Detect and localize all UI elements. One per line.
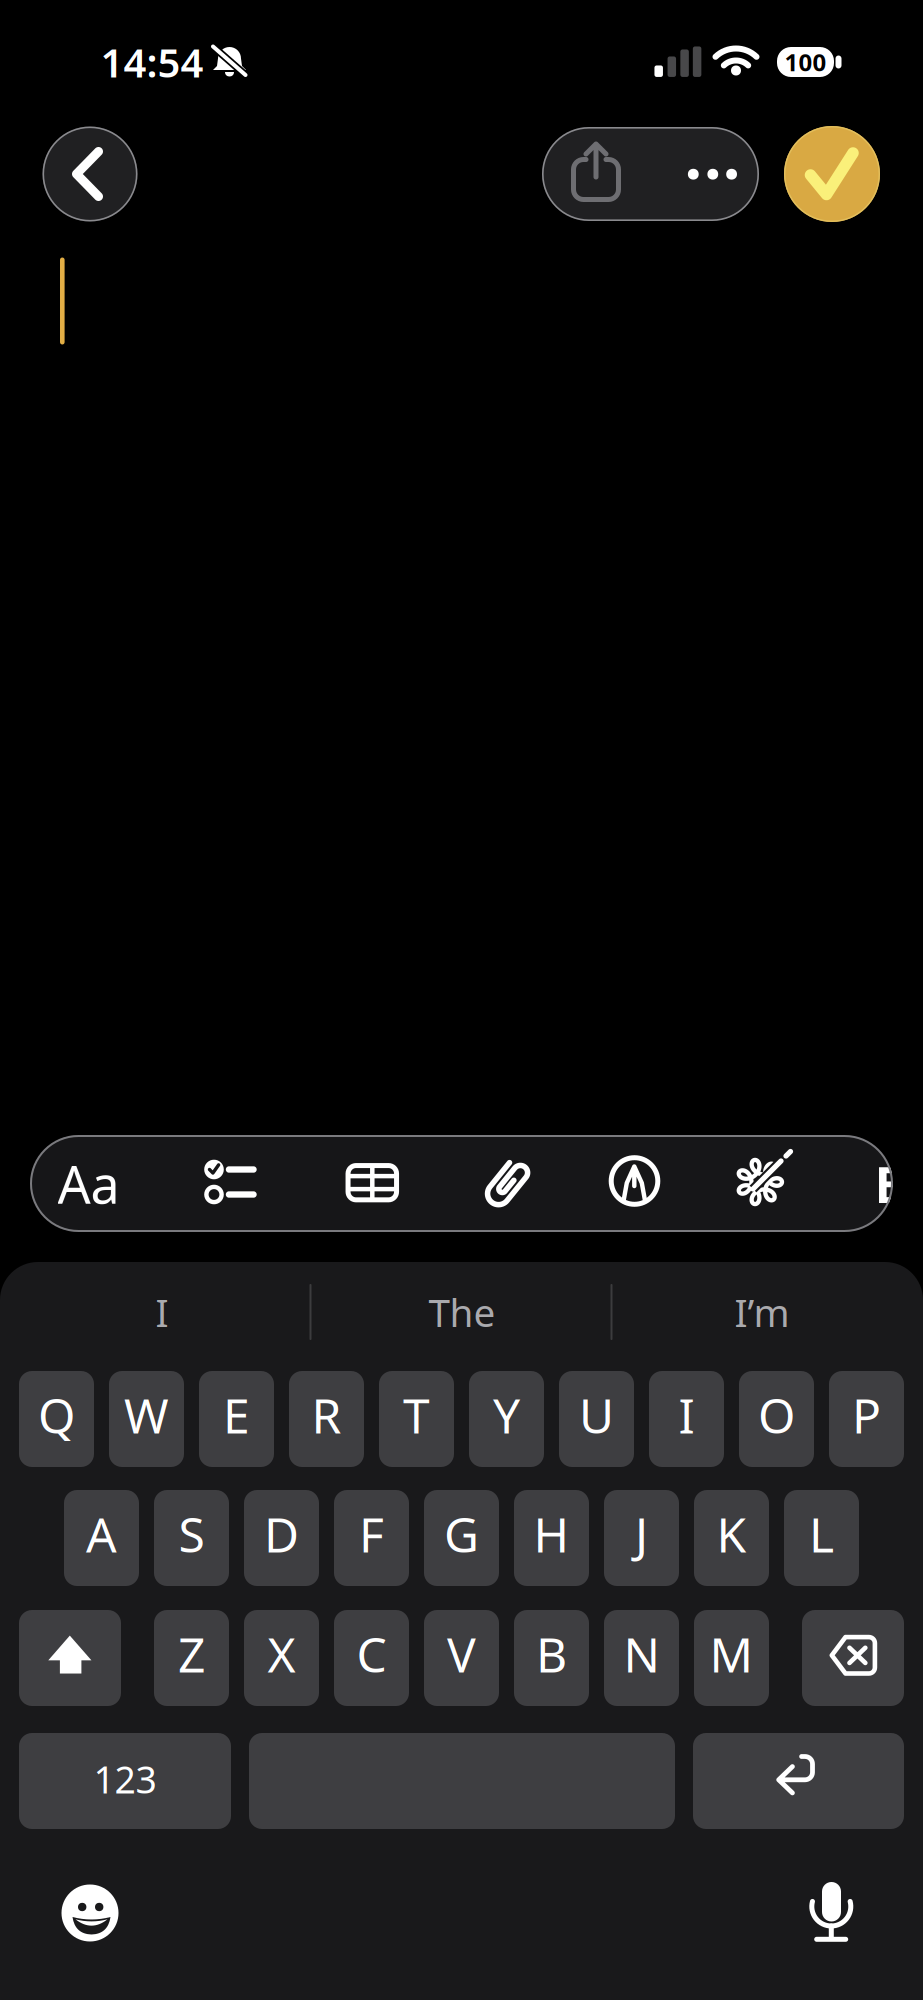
staticText: R [311,1383,341,1447]
button[interactable]: Format [43,1135,133,1232]
button[interactable]: Dictate [801,1876,861,1946]
button[interactable]: The [322,1272,602,1352]
staticText: X [267,1622,295,1686]
staticText: C [356,1622,386,1686]
button[interactable]: D [244,1490,319,1586]
button[interactable]: S [154,1490,229,1586]
staticText: I [155,1286,168,1338]
staticText: B [536,1622,567,1686]
button[interactable]: R [289,1371,364,1467]
staticText: U [579,1383,614,1447]
button[interactable]: K [694,1490,769,1586]
button[interactable]: Delete [802,1610,904,1706]
button[interactable]: Bold [861,1135,921,1232]
staticText: Z [178,1622,205,1686]
button[interactable]: Writing Tools [724,1135,794,1232]
staticText: Q [38,1383,75,1447]
button[interactable]: J [604,1490,679,1586]
button[interactable]: T [379,1371,454,1467]
button[interactable]: Attach [476,1135,540,1232]
button[interactable]: N [604,1610,679,1706]
button[interactable]: Z [154,1610,229,1706]
button[interactable]: Table [340,1135,404,1232]
staticText: K [716,1502,746,1566]
button[interactable]: Markup [602,1135,666,1232]
staticText: O [758,1383,795,1447]
button[interactable]: P [829,1371,904,1467]
button[interactable]: W [109,1371,184,1467]
staticText: D [264,1502,299,1566]
staticText: L [809,1502,834,1566]
staticText: P [852,1383,881,1447]
staticText: T [403,1383,430,1447]
staticText: 123 [93,1754,156,1804]
button[interactable]: A [64,1490,139,1586]
staticText: S [178,1502,204,1566]
staticText: E [223,1383,250,1447]
button[interactable]: Done [784,126,880,222]
button[interactable]: I'm [622,1272,902,1352]
staticText: I [678,1383,694,1447]
staticText: H [533,1502,569,1566]
button[interactable]: Q [19,1371,94,1467]
button[interactable]: O [739,1371,814,1467]
staticText: Aa [57,1149,119,1218]
staticText: 14:54 [100,35,203,88]
button[interactable]: I [649,1371,724,1467]
button[interactable]: U [559,1371,634,1467]
button[interactable]: I [22,1272,302,1352]
staticText: The [428,1286,495,1338]
button[interactable]: G [424,1490,499,1586]
staticText: F [359,1502,384,1566]
button[interactable]: M [694,1610,769,1706]
button[interactable]: Emoji [59,1882,121,1944]
button[interactable]: Back [42,126,137,221]
staticText: V [447,1622,476,1686]
button[interactable]: Share [542,127,650,221]
button[interactable]: Y [469,1371,544,1467]
staticText: W [124,1383,169,1447]
staticText: M [709,1622,753,1686]
staticText: G [444,1502,479,1566]
staticText: J [635,1502,648,1566]
staticText: N [623,1622,659,1686]
staticText: A [86,1502,117,1566]
button[interactable]: Shift [19,1610,121,1706]
button[interactable]: E [199,1371,274,1467]
button[interactable]: More [650,127,759,221]
staticText: I’m [734,1286,789,1338]
staticText: 100 [784,46,826,78]
button[interactable]: Checklist [197,1135,261,1232]
button[interactable]: B [514,1610,589,1706]
button[interactable]: Return [693,1733,904,1829]
button[interactable]: Numbers [19,1733,231,1829]
staticText: Y [493,1383,520,1447]
button[interactable]: F [334,1490,409,1586]
button[interactable]: H [514,1490,589,1586]
button[interactable]: V [424,1610,499,1706]
button[interactable]: C [334,1610,409,1706]
staticText: B [874,1150,908,1217]
button[interactable]: X [244,1610,319,1706]
button[interactable]: L [784,1490,859,1586]
